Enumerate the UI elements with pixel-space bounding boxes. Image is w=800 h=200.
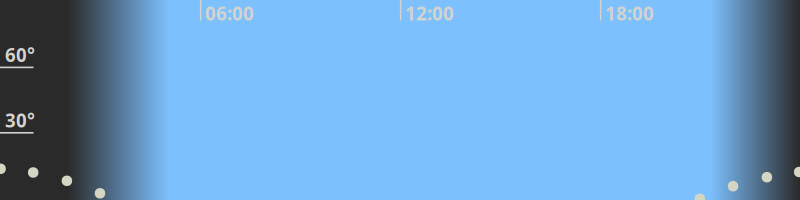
staticText: 30° [5,108,35,133]
staticText: 18:00 [605,1,654,26]
staticText: 60° [5,42,35,67]
staticText: 06:00 [205,1,254,26]
staticText: 12:00 [405,1,454,26]
